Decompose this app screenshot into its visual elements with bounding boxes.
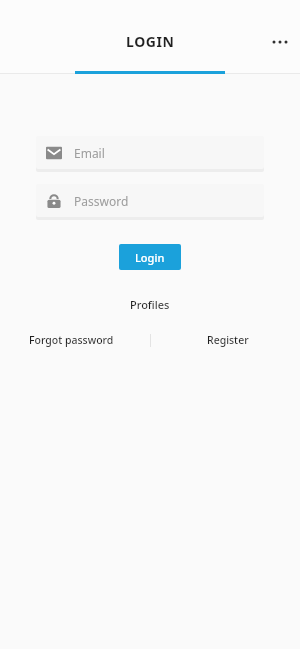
button[interactable]: More options bbox=[264, 26, 296, 58]
button[interactable]: Password bbox=[36, 184, 264, 217]
staticText: Login bbox=[135, 250, 165, 265]
button[interactable]: Email bbox=[36, 136, 264, 169]
staticText: Register bbox=[207, 333, 249, 347]
button[interactable]: Login bbox=[119, 244, 181, 270]
button[interactable]: Forgot password bbox=[29, 333, 114, 347]
staticText: Forgot password bbox=[29, 333, 114, 347]
staticText: Password bbox=[74, 193, 129, 209]
button[interactable]: Profiles bbox=[120, 295, 180, 314]
staticText: Email bbox=[74, 145, 105, 161]
staticText: LOGIN bbox=[126, 32, 175, 51]
staticText: Profiles bbox=[130, 297, 170, 312]
button[interactable]: Register bbox=[207, 333, 249, 347]
